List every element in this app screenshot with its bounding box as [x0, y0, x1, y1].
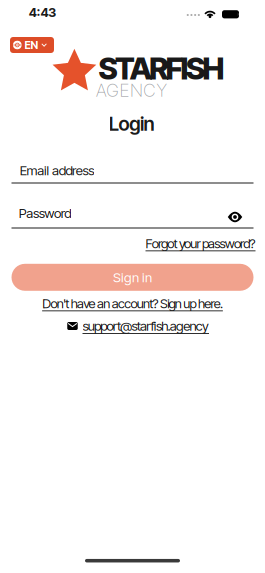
staticText: Email address: [20, 162, 94, 178]
staticText: STARFISH: [98, 50, 225, 87]
staticText: Forgot your password?: [145, 236, 255, 251]
staticText: Sign in: [113, 269, 152, 285]
button[interactable]: Change language: [10, 37, 54, 53]
button[interactable]: Show password: [227, 211, 243, 223]
staticText: AGENCY: [96, 79, 167, 101]
staticText: EN: [24, 38, 38, 52]
staticText: Login: [109, 112, 155, 135]
button[interactable]: Don't have an account? Sign up here.: [42, 296, 223, 311]
staticText: Password: [19, 205, 71, 221]
staticText: 4:43: [29, 5, 56, 20]
staticText: Don't have an account? Sign up here.: [42, 296, 223, 311]
button[interactable]: Forgot your password?: [145, 236, 255, 251]
staticText: support@starfish.agency: [82, 318, 209, 334]
button[interactable]: Sign in: [11, 264, 253, 291]
button[interactable]: support@starfish.agency: [67, 318, 209, 334]
